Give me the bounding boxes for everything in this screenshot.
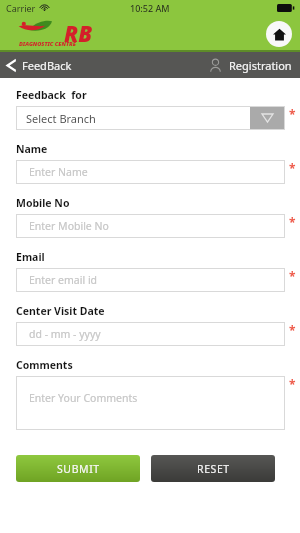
staticText: Email — [16, 250, 45, 264]
button[interactable]: dd - mm - yyyy — [16, 322, 285, 346]
staticText: * — [289, 376, 296, 392]
button[interactable]: Registration — [203, 52, 300, 78]
staticText: Registration — [229, 58, 292, 73]
button[interactable]: Enter Mobile No — [16, 214, 285, 238]
button[interactable]: Enter Your Comments — [16, 376, 285, 430]
staticText: Enter email id — [29, 273, 98, 287]
button[interactable]: RESET — [151, 455, 275, 482]
staticText: Comments — [16, 358, 73, 372]
staticText: FeedBack — [22, 58, 72, 73]
staticText: * — [289, 322, 296, 338]
staticText: DIAGNOSTIC CENTRE — [19, 40, 76, 48]
staticText: RB — [64, 18, 93, 48]
staticText: 10:52 AM — [130, 2, 170, 14]
staticText: dd - mm - yyyy — [29, 327, 101, 341]
button[interactable]: Enter email id — [16, 268, 285, 292]
staticText: Select Branch — [26, 111, 96, 126]
staticText: Center Visit Date — [16, 304, 105, 318]
staticText: SUBMIT — [57, 462, 100, 476]
staticText: Carrier — [6, 2, 36, 14]
button[interactable]: Home — [266, 21, 292, 47]
staticText: RESET — [197, 462, 230, 476]
staticText: Name — [16, 142, 48, 156]
button[interactable]: FeedBack — [0, 52, 80, 78]
button[interactable]: SUBMIT — [16, 455, 140, 482]
staticText: * — [289, 268, 296, 284]
button[interactable]: Enter Name — [16, 160, 285, 184]
staticText: * — [289, 106, 296, 122]
staticText: * — [289, 214, 296, 230]
staticText: Mobile No — [16, 196, 70, 210]
staticText: Enter Name — [29, 165, 88, 179]
staticText: Enter Mobile No — [29, 219, 109, 233]
staticText: * — [289, 160, 296, 176]
button[interactable]: Select Branch — [16, 106, 285, 130]
staticText: Feedback for — [16, 88, 87, 102]
staticText: Enter Your Comments — [29, 391, 138, 405]
